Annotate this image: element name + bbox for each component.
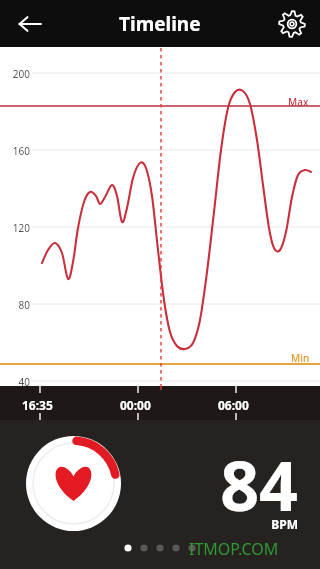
staticText: 80 (0, 298, 30, 312)
staticText: 84 (150, 438, 298, 531)
staticText: 40 (0, 375, 30, 389)
staticText: 120 (0, 221, 30, 235)
staticText: Max (288, 95, 309, 109)
staticText: 16:35 (22, 397, 53, 413)
staticText: 06:00 (218, 397, 249, 413)
staticText: 160 (0, 144, 30, 158)
staticText: 200 (0, 67, 30, 81)
button[interactable]: Settings (270, 2, 314, 46)
staticText: 00:00 (120, 397, 151, 413)
button[interactable]: Back (8, 2, 52, 46)
staticText: Timeline (119, 11, 201, 37)
other: Heart rate (26, 436, 121, 531)
staticText: ITMOP.COM (189, 538, 279, 560)
button[interactable]: Heart rate (0, 420, 320, 569)
staticText: BPM (150, 516, 298, 532)
staticText: Min (291, 351, 310, 365)
